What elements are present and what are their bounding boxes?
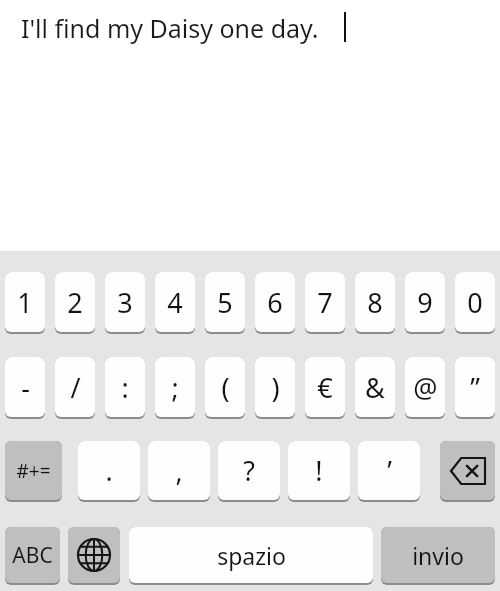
staticText: 8 xyxy=(367,284,383,321)
button[interactable]: #+= xyxy=(5,441,62,500)
button[interactable]: ’ xyxy=(358,441,420,500)
button[interactable]: 2 xyxy=(55,272,95,332)
button[interactable]: 9 xyxy=(405,272,445,332)
button[interactable]: ? xyxy=(218,441,280,500)
staticText: 4 xyxy=(167,284,183,321)
staticText: 9 xyxy=(417,284,433,321)
staticText: @ xyxy=(413,369,438,406)
staticText: ; xyxy=(171,369,179,406)
button[interactable]: ” xyxy=(455,357,495,417)
staticText: : xyxy=(121,369,129,406)
staticText: . xyxy=(105,452,113,489)
button[interactable]: @ xyxy=(405,357,445,417)
button[interactable]: 0 xyxy=(455,272,495,332)
button[interactable]: 7 xyxy=(305,272,345,332)
button[interactable]: invio xyxy=(381,527,495,583)
button[interactable]: Backspace xyxy=(440,441,495,500)
staticText: ’ xyxy=(387,452,392,489)
button[interactable]: 5 xyxy=(205,272,245,332)
staticText: , xyxy=(175,452,183,489)
staticText: 5 xyxy=(217,284,233,321)
staticText: ? xyxy=(243,452,255,489)
staticText: ( xyxy=(221,369,230,406)
staticText: 1 xyxy=(17,284,33,321)
button[interactable]: 1 xyxy=(5,272,45,332)
button[interactable]: - xyxy=(5,357,45,417)
button[interactable]: / xyxy=(55,357,95,417)
button[interactable]: 3 xyxy=(105,272,145,332)
button[interactable]: . xyxy=(78,441,140,500)
staticText: ! xyxy=(315,452,323,489)
button[interactable]: ! xyxy=(288,441,350,500)
button[interactable]: ) xyxy=(255,357,295,417)
staticText: ” xyxy=(470,369,480,406)
button[interactable]: € xyxy=(305,357,345,417)
staticText: 3 xyxy=(117,284,133,321)
button[interactable]: : xyxy=(105,357,145,417)
staticText: € xyxy=(317,369,333,406)
button[interactable]: 6 xyxy=(255,272,295,332)
button[interactable]: , xyxy=(148,441,210,500)
staticText: / xyxy=(70,369,81,406)
staticText: I'll find my Daisy one day. xyxy=(21,11,319,45)
staticText: spazio xyxy=(217,540,286,571)
staticText: & xyxy=(365,369,385,406)
button[interactable]: ABC xyxy=(5,527,60,583)
button[interactable]: Next keyboard xyxy=(68,527,120,583)
staticText: 0 xyxy=(467,284,483,321)
button[interactable]: ; xyxy=(155,357,195,417)
staticText: ) xyxy=(271,369,280,406)
staticText: ABC xyxy=(12,541,53,570)
staticText: 7 xyxy=(317,284,333,321)
staticText: 6 xyxy=(267,284,283,321)
staticText: #+= xyxy=(16,458,51,484)
button[interactable]: spazio xyxy=(129,527,373,583)
button[interactable]: & xyxy=(355,357,395,417)
staticText: invio xyxy=(412,540,464,571)
button[interactable]: 8 xyxy=(355,272,395,332)
staticText: - xyxy=(21,369,30,406)
staticText: 2 xyxy=(67,284,83,321)
button[interactable]: 4 xyxy=(155,272,195,332)
button[interactable]: ( xyxy=(205,357,245,417)
